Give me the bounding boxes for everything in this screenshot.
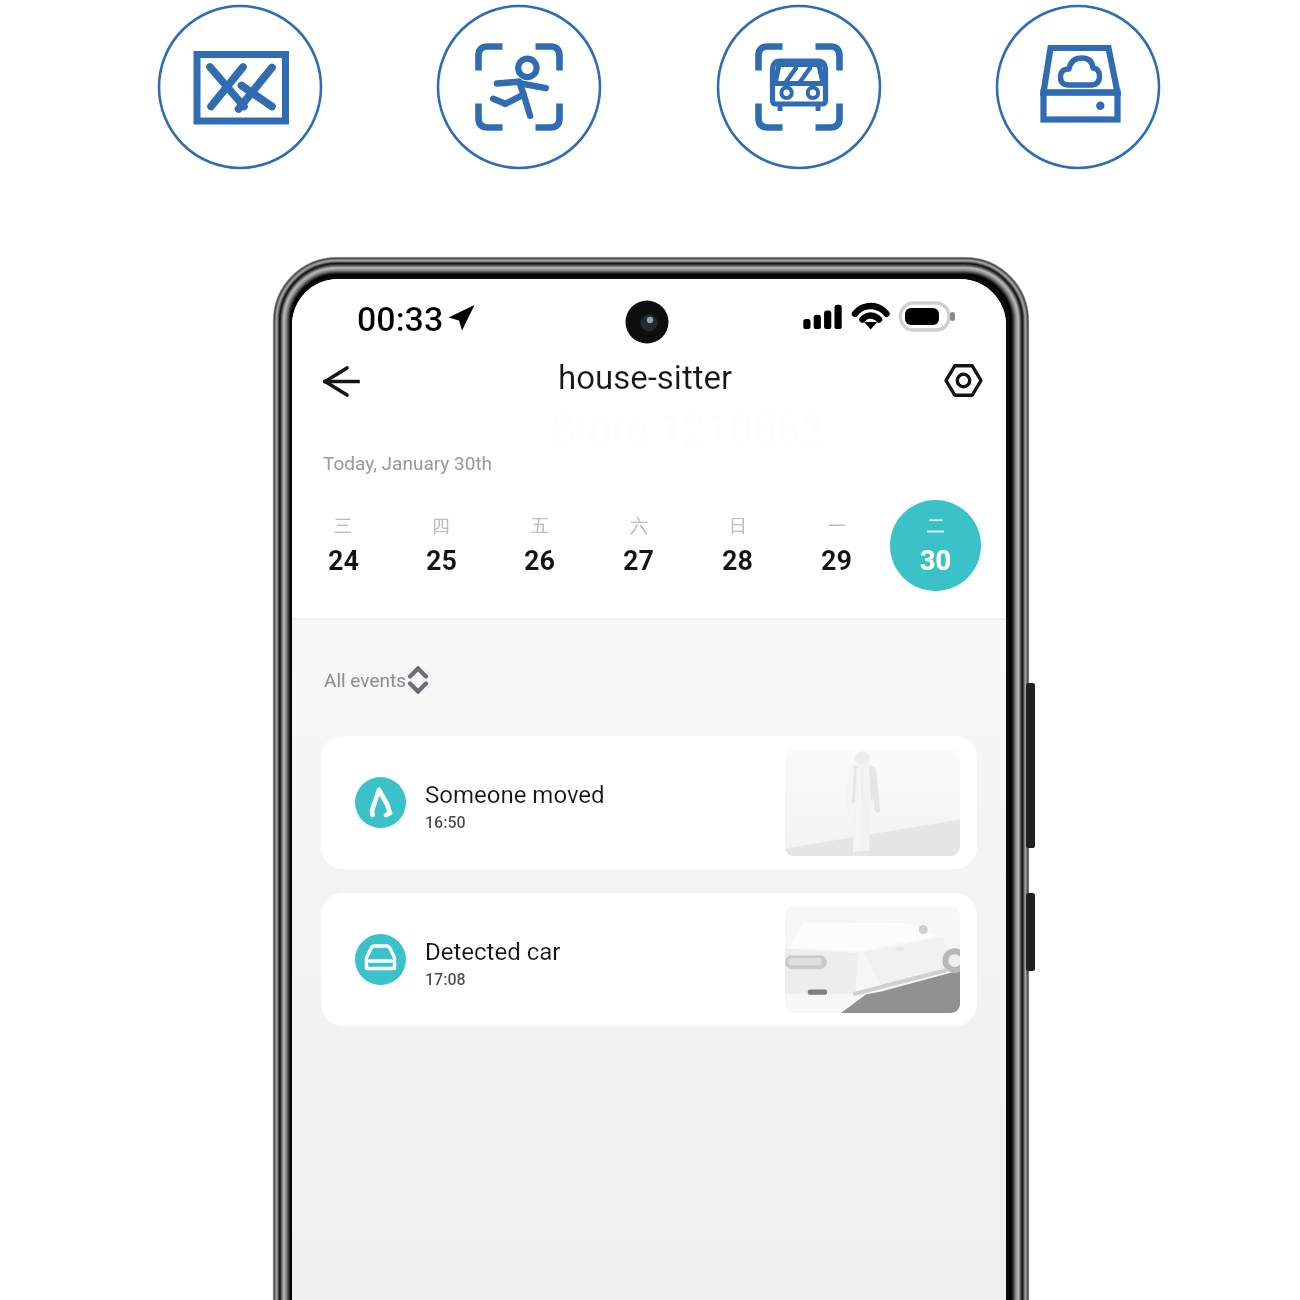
button[interactable]: Human detection	[437, 5, 601, 169]
staticText: 26	[524, 545, 555, 577]
button[interactable]: 日	[688, 498, 787, 592]
staticText: 一	[828, 515, 846, 538]
button[interactable]: Back	[309, 351, 371, 413]
button[interactable]: 一	[787, 498, 886, 592]
staticText: 16:50	[425, 813, 466, 832]
staticText: 四	[432, 515, 450, 538]
button[interactable]: Anti dazzle	[158, 5, 322, 169]
staticText: 六	[630, 515, 648, 538]
staticText: 29	[821, 545, 852, 577]
button[interactable]: 五	[490, 498, 589, 592]
button[interactable]: 二	[886, 498, 985, 592]
staticText: 27	[623, 545, 654, 577]
staticText: 日	[729, 515, 747, 538]
staticText: 30	[920, 545, 951, 577]
button[interactable]: 六	[589, 498, 688, 592]
staticText: 17:08	[425, 970, 466, 989]
staticText: All events	[324, 669, 406, 691]
button[interactable]: Vehicle detection	[717, 5, 881, 169]
staticText: 28	[722, 545, 753, 577]
staticText: Detected car	[425, 938, 561, 966]
button[interactable]: Someone moved	[321, 736, 977, 869]
button[interactable]: Detected car	[321, 893, 977, 1026]
button[interactable]: 三	[294, 498, 392, 592]
staticText: 五	[531, 515, 549, 538]
staticText: 二	[927, 515, 945, 538]
staticText: 24	[328, 545, 359, 577]
button[interactable]: 四	[392, 498, 490, 592]
button[interactable]: Cloud storage	[996, 5, 1160, 169]
button[interactable]: All events	[324, 660, 426, 694]
staticText: 三	[334, 515, 352, 538]
button[interactable]: Settings	[934, 354, 990, 410]
staticText: 25	[426, 545, 457, 577]
staticText: Today, January 30th	[323, 452, 493, 474]
staticText: 00:33	[357, 299, 444, 339]
staticText: Someone moved	[425, 781, 605, 809]
staticText: house-sitter	[558, 358, 733, 397]
